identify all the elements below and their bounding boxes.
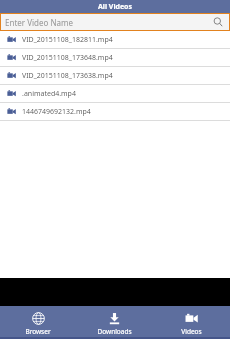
staticText: Browser: [25, 327, 51, 336]
button[interactable]: VID_20151108_173638.mp4: [0, 67, 230, 84]
staticText: .animated4.mp4: [22, 89, 76, 99]
button[interactable]: Downloads: [76, 306, 153, 337]
staticText: Downloads: [97, 327, 132, 336]
staticText: Videos: [181, 327, 202, 336]
staticText: Enter Video Name: [5, 17, 73, 28]
other: Search: [213, 17, 223, 27]
staticText: 1446749692132.mp4: [22, 107, 91, 117]
button[interactable]: VID_20151108_182811.mp4: [0, 31, 230, 48]
button[interactable]: Browser: [0, 306, 76, 337]
button[interactable]: 1446749692132.mp4: [0, 103, 230, 120]
staticText: VID_20151108_173648.mp4: [22, 53, 113, 63]
staticText: VID_20151108_173638.mp4: [22, 71, 113, 81]
button[interactable]: .animated4.mp4: [0, 85, 230, 102]
button[interactable]: VID_20151108_173648.mp4: [0, 49, 230, 66]
staticText: VID_20151108_182811.mp4: [22, 35, 113, 45]
button[interactable]: Enter Video Name: [0, 13, 230, 31]
button[interactable]: Videos: [153, 306, 230, 337]
staticText: All Videos: [98, 2, 132, 12]
